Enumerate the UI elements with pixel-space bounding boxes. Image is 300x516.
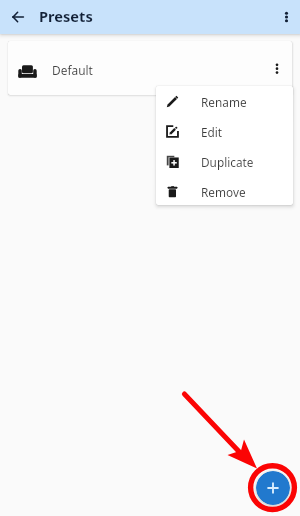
staticText: Presets [39, 6, 93, 26]
staticText: Rename [201, 94, 247, 110]
staticText: Default [52, 62, 93, 78]
button[interactable]: Preset options [263, 54, 291, 82]
button[interactable]: Default [8, 41, 292, 95]
button[interactable]: Add preset [256, 471, 290, 505]
button[interactable]: Duplicate [156, 146, 293, 176]
staticText: Edit [201, 124, 223, 140]
button[interactable]: More options [274, 5, 298, 29]
staticText: Remove [201, 184, 246, 200]
button[interactable]: Remove [156, 176, 293, 205]
button[interactable]: Rename [156, 86, 293, 116]
button[interactable]: Edit [156, 116, 293, 146]
button[interactable]: Back [6, 5, 30, 29]
staticText: Duplicate [201, 154, 254, 170]
